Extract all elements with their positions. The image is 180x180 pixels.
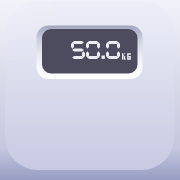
- button[interactable]: Bathroom scale showing 50.0 KG: [0, 0, 180, 180]
